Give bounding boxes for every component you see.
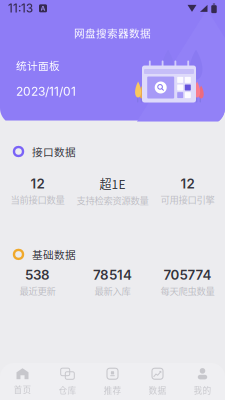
staticText: 接口数据	[32, 144, 76, 159]
staticText: 我的	[193, 384, 211, 396]
button[interactable]: 我的	[180, 359, 225, 400]
staticText: 超1E	[99, 175, 125, 192]
button[interactable]: 数据	[135, 359, 180, 400]
staticText: 基础数据	[32, 247, 76, 262]
staticText: 最近更新	[19, 284, 55, 297]
staticText: 11:13	[8, 1, 33, 15]
staticText: 网盘搜索器数据	[74, 25, 151, 41]
staticText: 78514	[93, 267, 132, 283]
staticText: 支持检索资源数量	[76, 193, 148, 207]
staticText: 705774	[163, 267, 211, 283]
button[interactable]: 首页	[0, 359, 45, 400]
button[interactable]: 推荐	[90, 359, 135, 400]
staticText: 首页	[13, 383, 31, 396]
button[interactable]: 仓库	[45, 359, 90, 400]
staticText: 最新入库	[94, 284, 130, 297]
staticText: 当前接口数量	[10, 193, 64, 206]
staticText: 每天爬虫数量	[160, 284, 214, 297]
staticText: 数据	[148, 384, 166, 396]
staticText: 12	[30, 176, 44, 192]
staticText: A	[40, 4, 45, 12]
staticText: 仓库	[58, 384, 76, 396]
staticText: 推荐	[103, 384, 121, 396]
staticText: 538	[25, 267, 50, 283]
staticText: 统计面板	[16, 58, 60, 73]
staticText: 可用接口引擎	[160, 193, 214, 206]
staticText: 2023/11/01	[16, 84, 76, 99]
staticText: 12	[180, 176, 194, 192]
